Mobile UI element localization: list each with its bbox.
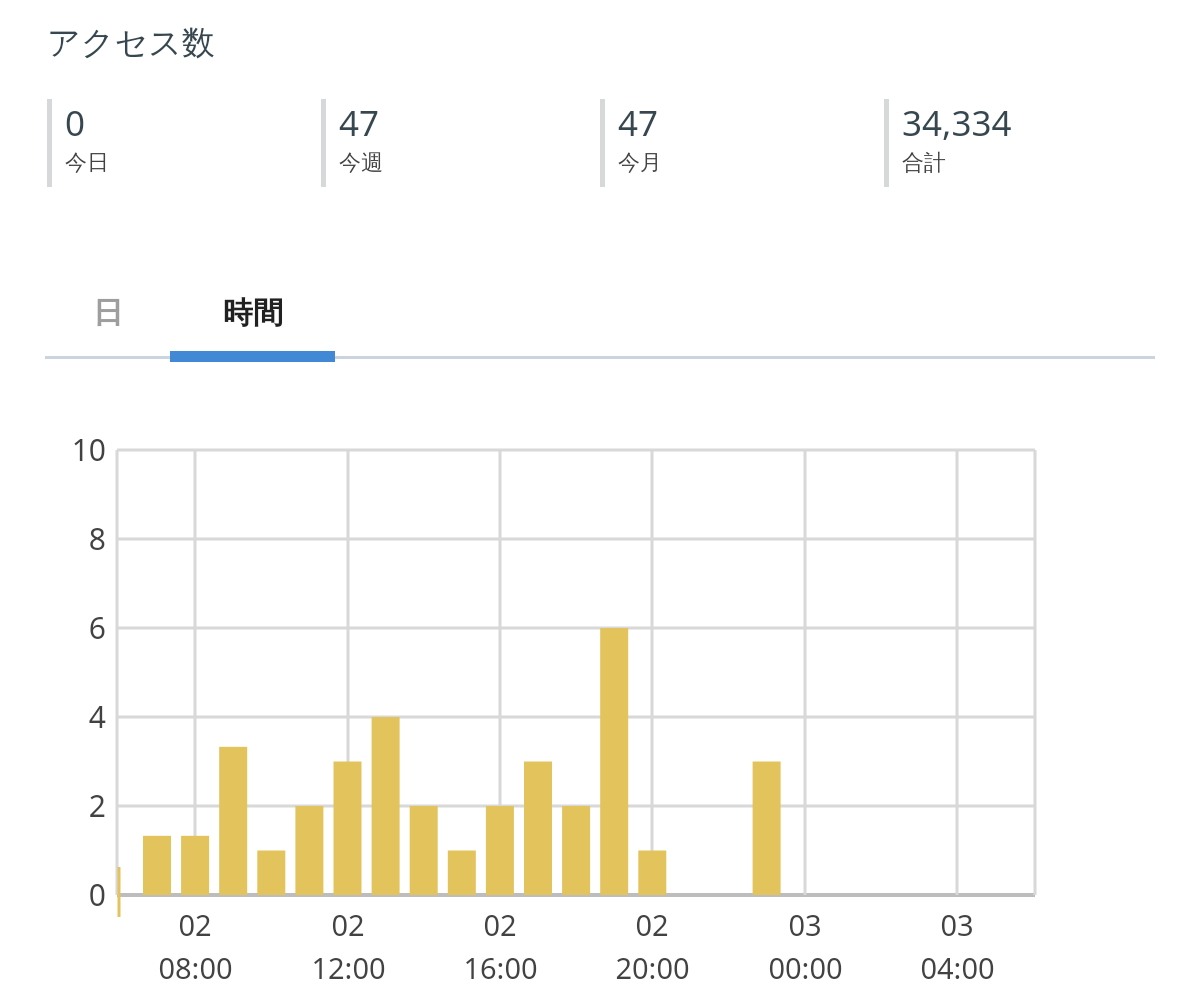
button[interactable]: 47: [321, 99, 586, 187]
staticText: 今週: [339, 149, 383, 177]
staticText: 47: [618, 99, 659, 147]
staticText: 08:00: [158, 948, 233, 987]
staticText: 34,334: [902, 99, 1012, 147]
button[interactable]: 時間: [170, 270, 335, 362]
staticText: 0: [88, 874, 106, 915]
staticText: 時間: [223, 294, 283, 332]
staticText: 02: [635, 905, 669, 944]
staticText: 03: [788, 905, 822, 944]
staticText: 03: [940, 905, 974, 944]
staticText: 2: [88, 785, 106, 826]
button[interactable]: 0: [47, 99, 312, 187]
staticText: 日: [93, 294, 123, 332]
staticText: 02: [483, 905, 517, 944]
staticText: 00:00: [768, 948, 843, 987]
staticText: 02: [178, 905, 212, 944]
staticText: 04:00: [920, 948, 995, 987]
staticText: 47: [339, 99, 380, 147]
button[interactable]: 34,334: [884, 99, 1149, 187]
staticText: 今日: [65, 149, 109, 177]
staticText: 02: [331, 905, 365, 944]
staticText: 6: [88, 607, 106, 648]
staticText: アクセス数: [47, 22, 216, 64]
staticText: 合計: [902, 149, 946, 177]
staticText: 8: [88, 518, 106, 559]
staticText: 10: [71, 429, 106, 470]
staticText: 0: [65, 99, 86, 147]
staticText: 20:00: [615, 948, 690, 987]
staticText: 12:00: [311, 948, 386, 987]
staticText: 4: [88, 696, 106, 737]
button[interactable]: 日: [58, 270, 158, 356]
staticText: 今月: [618, 149, 662, 177]
staticText: 16:00: [463, 948, 538, 987]
button[interactable]: 47: [600, 99, 865, 187]
